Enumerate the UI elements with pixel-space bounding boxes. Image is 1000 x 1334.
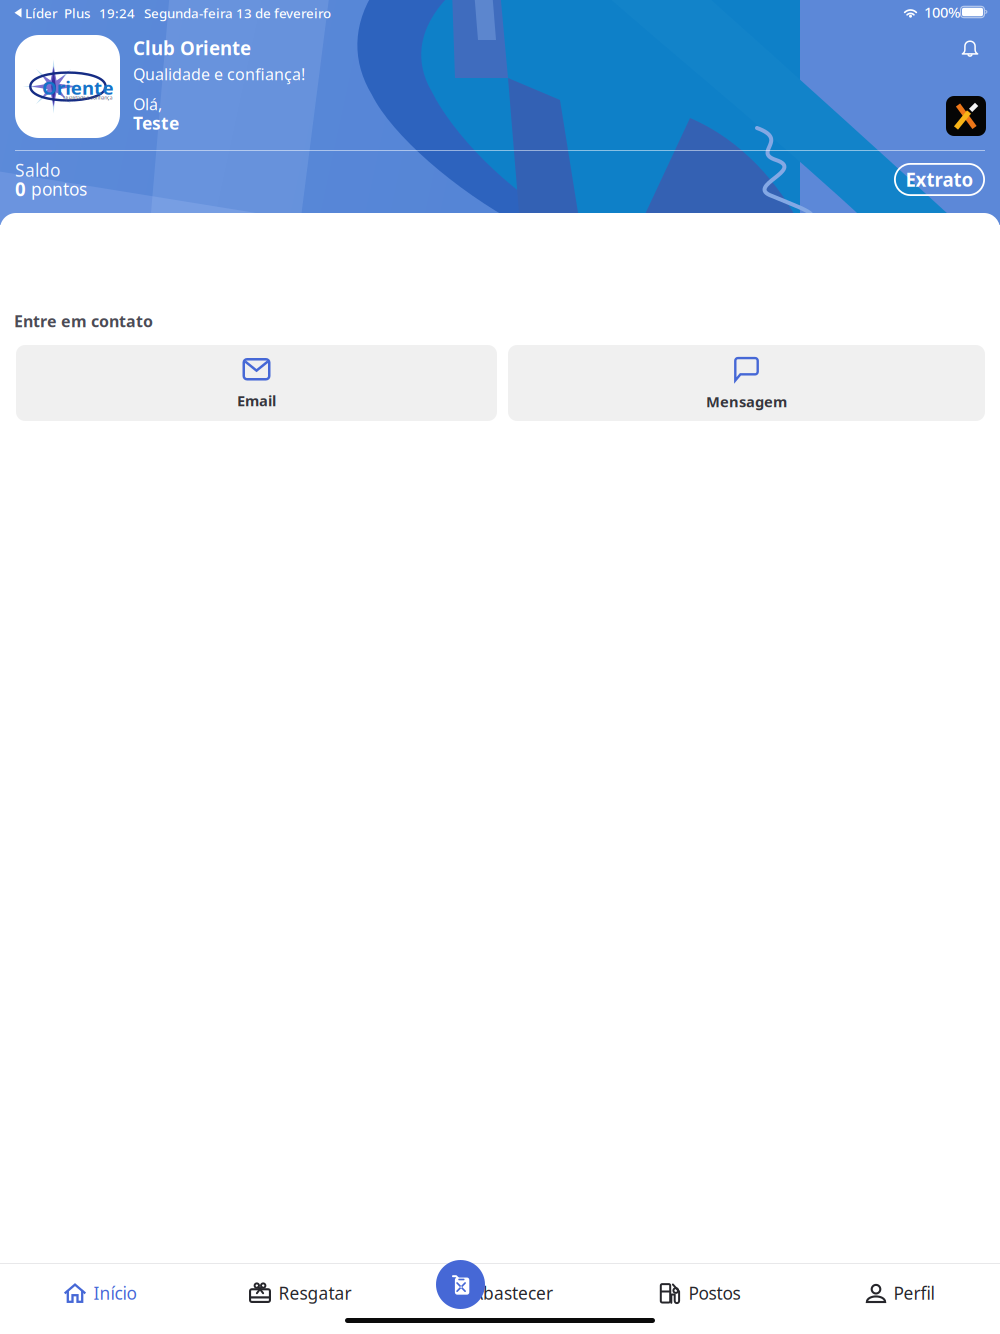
- staticText: Saldo: [15, 158, 60, 181]
- button[interactable]: Início: [0, 1266, 200, 1320]
- staticText: Postos: [688, 1281, 740, 1304]
- staticText: pontos: [31, 177, 87, 200]
- staticText: Líder Plus 19:24 Segunda-feira 13 de fev…: [25, 4, 331, 22]
- staticText: Início: [93, 1281, 136, 1304]
- button[interactable]: Notificações: [948, 30, 992, 68]
- staticText: Qualidade e confiança!: [133, 63, 305, 85]
- button[interactable]: Resgatar: [200, 1266, 400, 1320]
- staticText: Qualidade e confiança: [63, 95, 116, 102]
- button[interactable]: Mensagem: [508, 345, 985, 421]
- button[interactable]: Extrato: [894, 163, 985, 196]
- button[interactable]: Email: [16, 345, 497, 421]
- button[interactable]: Abastecer: [400, 1266, 600, 1320]
- staticText: Mensagem: [706, 392, 787, 411]
- staticText: Email: [237, 391, 276, 410]
- staticText: Entre em contato: [14, 310, 153, 332]
- button[interactable]: Abastecer: [436, 1260, 485, 1309]
- staticText: 0: [15, 177, 26, 201]
- staticText: Olá,: [133, 93, 162, 115]
- button[interactable]: Parceiro: [946, 96, 986, 136]
- staticText: Abastecer: [472, 1281, 553, 1304]
- staticText: Teste: [133, 111, 179, 134]
- staticText: Perfil: [893, 1281, 934, 1304]
- staticText: Extrato: [905, 167, 973, 192]
- staticText: Oriente: [40, 74, 117, 101]
- staticText: Club Oriente: [133, 36, 251, 60]
- staticText: Resgatar: [278, 1281, 351, 1304]
- staticText: 100%: [924, 2, 960, 22]
- button[interactable]: Perfil: [800, 1266, 1000, 1320]
- button[interactable]: Postos: [600, 1266, 800, 1320]
